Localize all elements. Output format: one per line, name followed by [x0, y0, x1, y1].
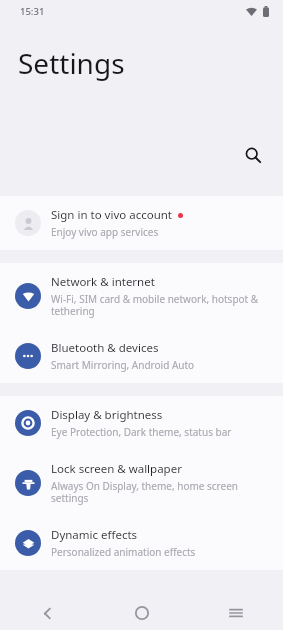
- staticText: Personalized animation effects: [51, 545, 196, 559]
- button[interactable]: Network & internet: [0, 263, 283, 329]
- staticText: Sign in to vivo account: [51, 207, 173, 223]
- button[interactable]: Back: [0, 596, 95, 630]
- staticText: Dynamic effects: [51, 527, 138, 543]
- button[interactable]: Dynamic effects: [0, 516, 283, 570]
- button[interactable]: Bluetooth & devices: [0, 329, 283, 383]
- button[interactable]: Display & brightness: [0, 396, 283, 450]
- staticText: Display & brightness: [51, 407, 163, 423]
- staticText: Always On Display, theme, home screen se…: [51, 479, 267, 505]
- staticText: 15:31: [20, 5, 45, 18]
- button[interactable]: Search: [233, 135, 273, 175]
- button[interactable]: Lock screen & wallpaper: [0, 450, 283, 516]
- staticText: Enjoy vivo app services: [51, 225, 159, 239]
- staticText: Bluetooth & devices: [51, 340, 159, 356]
- staticText: Lock screen & wallpaper: [51, 461, 182, 477]
- button[interactable]: Home: [95, 596, 189, 630]
- staticText: Wi-Fi, SIM card & mobile network, hotspo…: [51, 292, 267, 318]
- button[interactable]: Sign in to vivo account: [0, 196, 283, 250]
- staticText: Network & internet: [51, 274, 155, 290]
- staticText: Settings: [18, 44, 125, 82]
- staticText: Smart Mirroring, Android Auto: [51, 358, 195, 372]
- button[interactable]: Recent apps: [189, 596, 283, 630]
- staticText: Eye Protection, Dark theme, status bar: [51, 425, 232, 439]
